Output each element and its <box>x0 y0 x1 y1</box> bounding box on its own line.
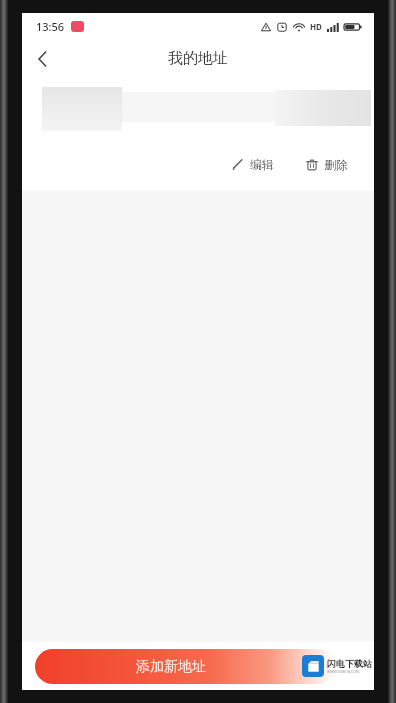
staticText: 13:56 <box>36 19 65 34</box>
staticText: 闪电下载站 <box>327 658 372 669</box>
button[interactable]: 编辑 <box>229 151 276 178</box>
staticText: 我的地址 <box>168 49 228 68</box>
button[interactable]: Back <box>22 40 62 77</box>
staticText: WWW.SDBETA.COM <box>327 669 359 674</box>
staticText: 编辑 <box>250 157 274 172</box>
button[interactable]: 添加新地址 <box>35 649 335 684</box>
staticText: 删除 <box>324 157 348 172</box>
staticText: 添加新地址 <box>136 658 206 676</box>
button[interactable]: 删除 <box>304 151 350 178</box>
staticText: HD <box>310 21 322 32</box>
